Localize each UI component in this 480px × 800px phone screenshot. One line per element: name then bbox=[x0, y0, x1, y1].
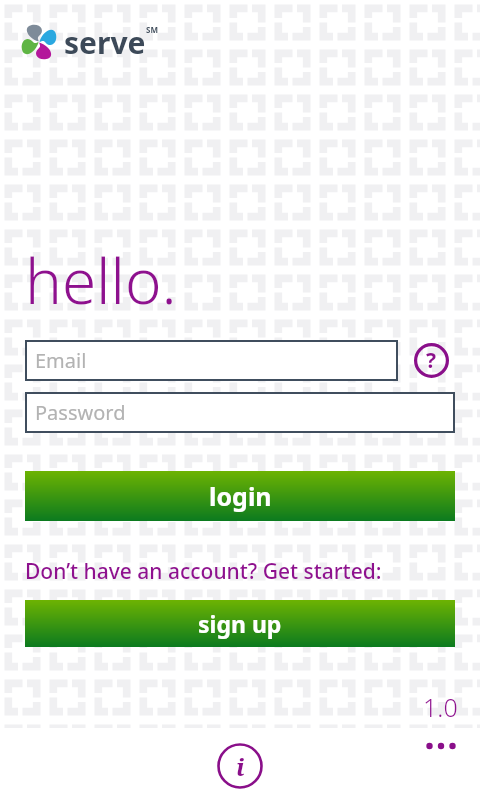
staticText: Email bbox=[35, 347, 87, 374]
button[interactable]: More options bbox=[420, 734, 462, 758]
staticText: ? bbox=[426, 346, 437, 375]
staticText: sign up bbox=[198, 608, 282, 639]
button[interactable]: login bbox=[25, 471, 455, 521]
button[interactable]: Password bbox=[25, 392, 455, 433]
staticText: i bbox=[236, 750, 245, 783]
staticText: SM bbox=[146, 24, 158, 35]
staticText: login bbox=[209, 479, 272, 513]
staticText: hello. bbox=[25, 238, 177, 322]
button[interactable]: Help bbox=[414, 343, 449, 378]
button[interactable]: sign up bbox=[25, 600, 455, 647]
staticText: Password bbox=[35, 399, 126, 426]
button[interactable]: Don’t have an account? Get started: bbox=[25, 557, 382, 586]
staticText: serve bbox=[64, 22, 146, 62]
button[interactable]: Info bbox=[217, 743, 263, 789]
staticText: 1.0 bbox=[423, 690, 458, 724]
button[interactable]: Email bbox=[25, 340, 398, 381]
